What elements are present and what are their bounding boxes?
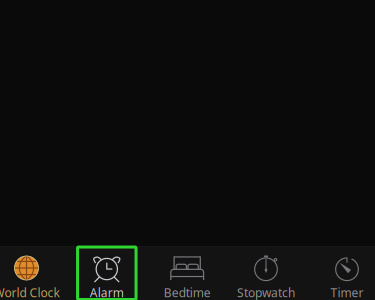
- staticText: Bedtime: [164, 285, 211, 300]
- button[interactable]: Bedtime: [158, 247, 216, 299]
- button[interactable]: Alarm: [77, 247, 136, 299]
- button[interactable]: World Clock: [0, 247, 56, 299]
- staticText: Alarm: [90, 285, 124, 300]
- button[interactable]: Stopwatch: [237, 247, 295, 299]
- button[interactable]: Timer: [318, 247, 375, 299]
- staticText: Stopwatch: [237, 285, 295, 300]
- staticText: Timer: [330, 285, 363, 300]
- staticText: World Clock: [0, 285, 59, 300]
